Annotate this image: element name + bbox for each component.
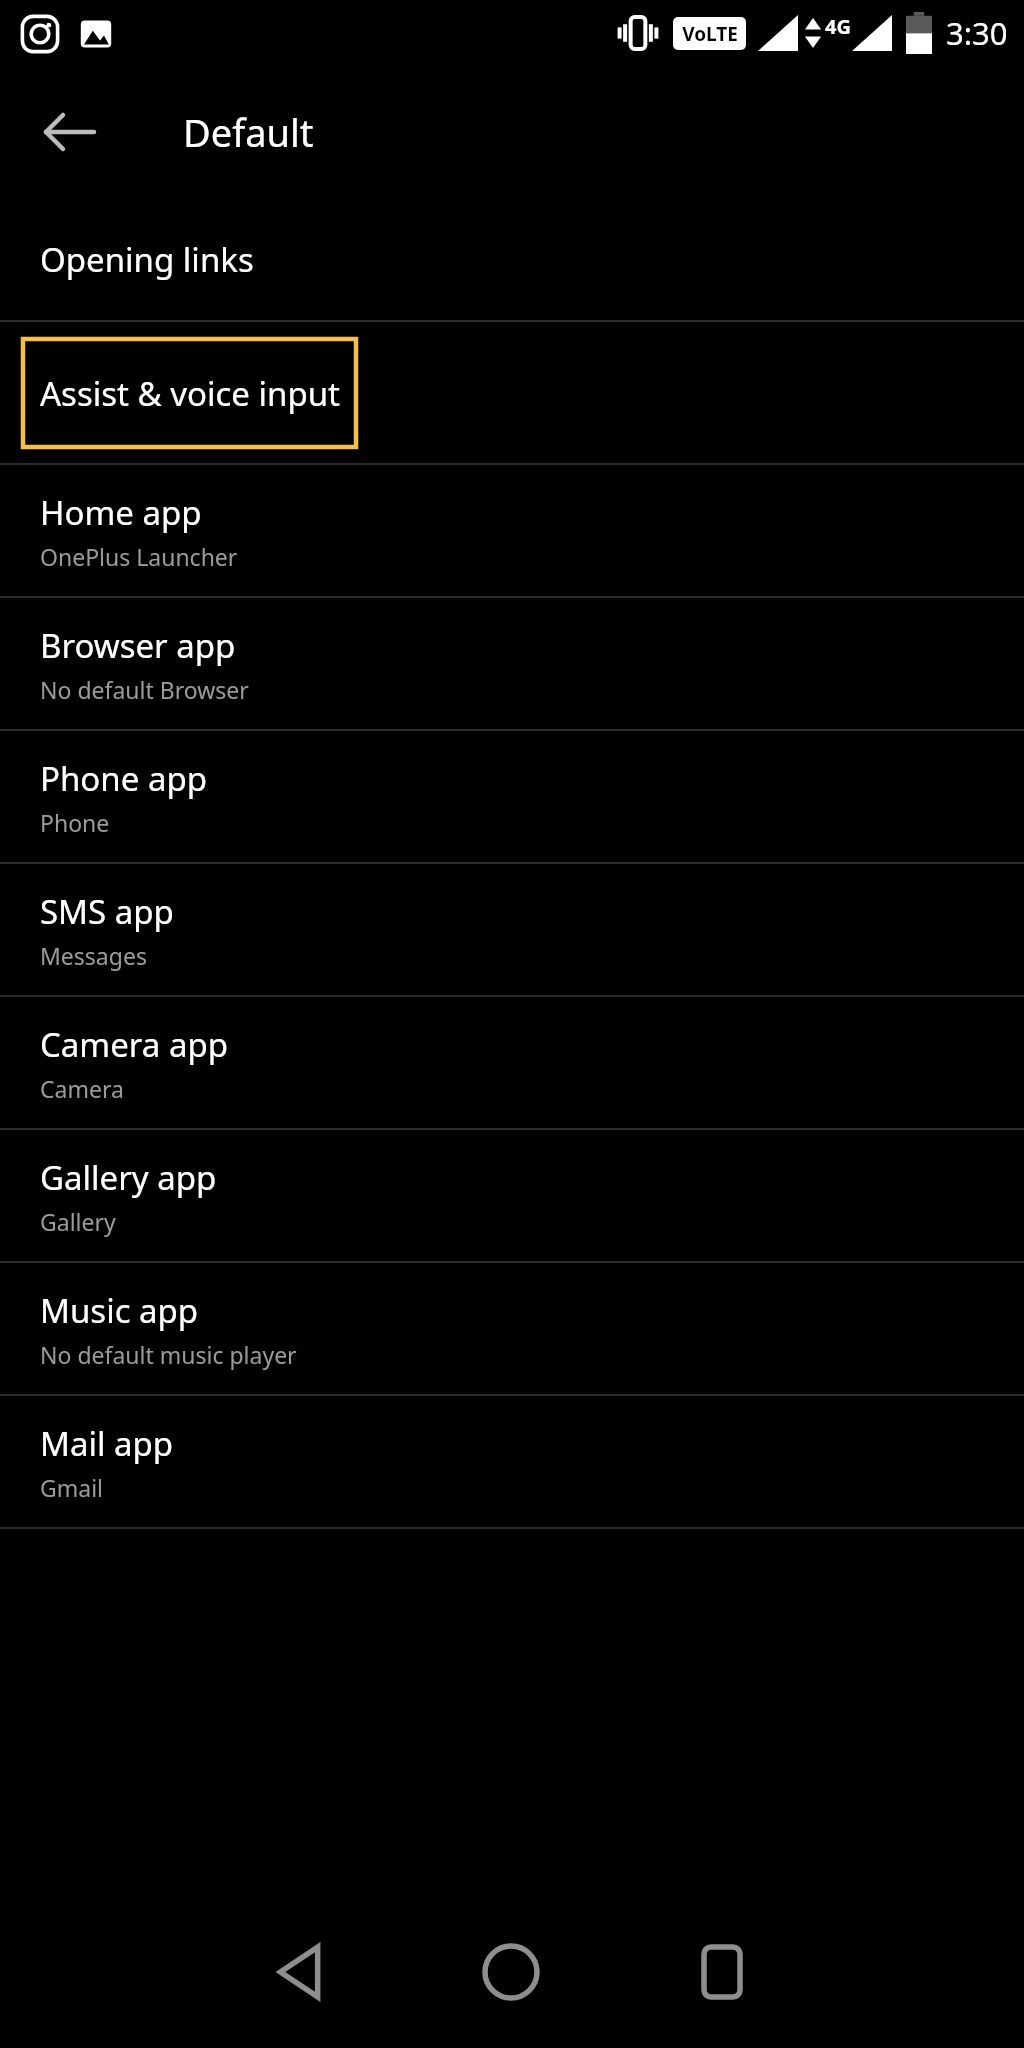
staticText: Mail app — [40, 1421, 174, 1466]
staticText: SMS app — [40, 889, 174, 934]
button[interactable]: SMS app — [0, 864, 1024, 995]
button[interactable]: Assist & voice input — [21, 337, 358, 449]
staticText: 4G — [825, 13, 851, 40]
button[interactable]: Camera app — [0, 997, 1024, 1128]
staticText: Browser app — [40, 623, 236, 668]
staticText: Camera app — [40, 1022, 229, 1067]
button[interactable]: Mail app — [0, 1396, 1024, 1527]
staticText: Default — [183, 106, 314, 158]
staticText: Phone app — [40, 756, 208, 801]
staticText: Home app — [40, 490, 202, 535]
button[interactable]: Back — [34, 96, 106, 168]
button[interactable]: Home — [475, 1936, 547, 2008]
staticText: Opening links — [40, 237, 254, 282]
staticText: Music app — [40, 1288, 199, 1333]
staticText: Assist & voice input — [40, 371, 341, 416]
staticText: No default Browser — [40, 674, 249, 705]
button[interactable]: Opening links — [0, 198, 1024, 320]
button[interactable]: Phone app — [0, 731, 1024, 862]
staticText: Gallery app — [40, 1155, 217, 1200]
staticText: Messages — [40, 940, 147, 971]
staticText: VoLTE — [682, 21, 738, 47]
staticText: Camera — [40, 1073, 124, 1104]
button[interactable]: Home app — [0, 465, 1024, 596]
staticText: Gmail — [40, 1472, 104, 1503]
button[interactable]: Gallery app — [0, 1130, 1024, 1261]
button[interactable]: Music app — [0, 1263, 1024, 1394]
staticText: No default music player — [40, 1339, 297, 1370]
staticText: OnePlus Launcher — [40, 541, 238, 572]
button[interactable]: Browser app — [0, 598, 1024, 729]
staticText: Gallery — [40, 1206, 116, 1237]
button[interactable]: Back — [266, 1936, 338, 2008]
button[interactable]: Recents — [686, 1936, 758, 2008]
staticText: 3:30 — [946, 12, 1008, 54]
staticText: Phone — [40, 807, 110, 838]
